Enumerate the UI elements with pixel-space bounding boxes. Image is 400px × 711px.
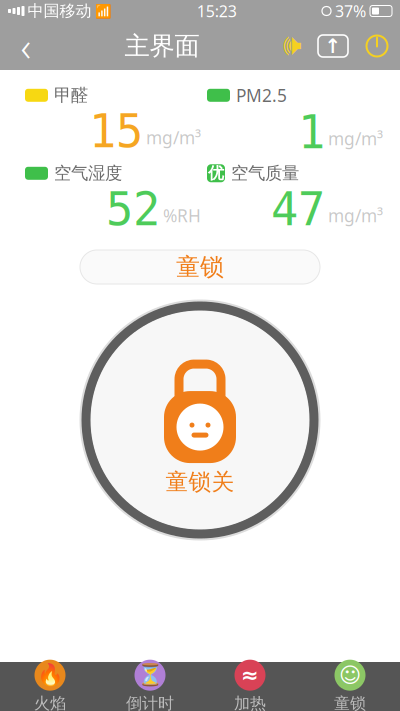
staticText: 1 [298,107,325,158]
button[interactable]: 童锁关 [80,300,320,540]
staticText: 中国移动 [27,1,91,21]
staticText: 倒计时 [126,694,174,711]
button[interactable]: 声音 [272,22,312,70]
staticText: 火焰 [34,694,66,711]
staticText: PM2.5 [236,84,287,107]
staticText: 空气质量 [231,163,299,184]
staticText: 空气湿度 [54,163,122,184]
staticText: ☺ [339,663,361,687]
button[interactable]: 童锁 [80,250,320,284]
staticText: 甲醛 [54,85,88,106]
button[interactable]: 电源 [354,22,400,70]
staticText: mg/m³ [328,127,383,150]
button[interactable]: 风速 [312,22,354,70]
staticText: ⏳ [136,663,163,687]
staticText: 加热 [234,694,266,711]
staticText: 🔥 [36,663,63,687]
button[interactable]: 🔥 [0,662,100,711]
staticText: 童锁关 [165,468,234,496]
staticText: 🕪 [283,32,301,60]
staticText: ‹ [20,19,31,72]
button[interactable]: ≈ [200,662,300,711]
button[interactable]: ⏳ [100,662,200,711]
staticText: %RH [163,204,201,227]
button[interactable]: ☺ [300,662,400,711]
staticText: 52 [106,184,160,235]
staticText: 主界面 [124,30,199,61]
staticText: 童锁 [334,694,366,711]
staticText: 47 [271,184,325,235]
button[interactable]: 返回 [0,22,52,70]
staticText: ↑ [324,35,341,57]
staticText: 📶 [94,3,111,19]
staticText: 15:23 [197,0,237,22]
staticText: 优 [208,163,224,183]
staticText: ≈ [241,663,259,687]
staticText: 童锁 [176,252,224,282]
staticText: mg/m³ [146,126,201,149]
staticText: mg/m³ [328,204,383,227]
staticText: 15 [89,106,143,157]
staticText: 37% [335,0,366,22]
